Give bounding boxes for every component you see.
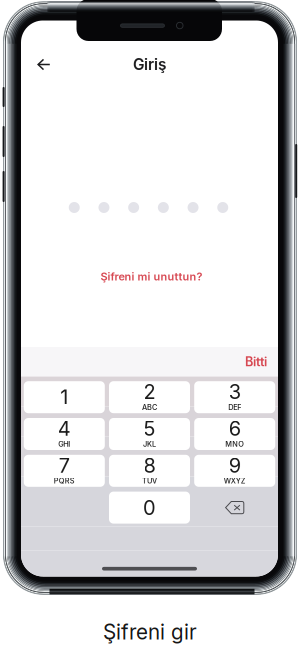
staticText: 4 xyxy=(58,416,71,441)
staticText: Bitti xyxy=(245,354,267,369)
staticText: WXYZ xyxy=(224,476,246,485)
staticText: 0 xyxy=(143,495,156,520)
staticText: 8 xyxy=(143,453,155,477)
button[interactable]: 2 xyxy=(109,381,190,413)
staticText: DEF xyxy=(228,403,241,412)
staticText: Giriş xyxy=(133,55,166,74)
staticText: 1 xyxy=(60,385,68,409)
button[interactable]: 5 xyxy=(109,418,190,450)
staticText: 5 xyxy=(143,416,155,441)
button[interactable]: Delete xyxy=(194,492,275,524)
staticText: 6 xyxy=(229,416,241,441)
button[interactable]: 0 xyxy=(109,492,190,524)
button[interactable]: 4 xyxy=(24,418,105,450)
button[interactable]: 6 xyxy=(194,418,275,450)
button[interactable]: Back xyxy=(29,50,59,78)
staticText: ABC xyxy=(142,403,157,412)
button[interactable]: Şifreni mi unuttun? xyxy=(23,269,280,283)
staticText: TUV xyxy=(142,476,157,485)
button[interactable]: 3 xyxy=(194,381,275,413)
staticText: PQRS xyxy=(54,476,75,485)
button[interactable]: Bitti xyxy=(245,348,278,375)
staticText: 2 xyxy=(143,380,155,404)
staticText: Şifreni gir xyxy=(103,619,197,644)
staticText: 7 xyxy=(59,453,70,477)
button[interactable]: 8 xyxy=(109,455,190,487)
button[interactable]: 1 xyxy=(24,381,105,413)
staticText: 3 xyxy=(229,380,241,404)
button[interactable]: 7 xyxy=(24,455,105,487)
staticText: Şifreni mi unuttun? xyxy=(100,270,202,283)
staticText: GHI xyxy=(58,440,70,449)
button[interactable]: 9 xyxy=(194,455,275,487)
staticText: MNO xyxy=(225,440,244,449)
staticText: 9 xyxy=(229,453,241,477)
staticText: JKL xyxy=(143,440,156,449)
